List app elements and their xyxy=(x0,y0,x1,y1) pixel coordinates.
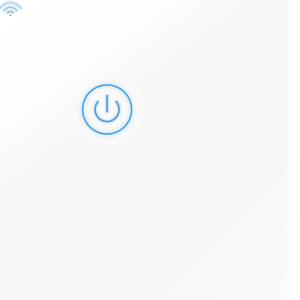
button[interactable]: Power xyxy=(47,49,167,169)
